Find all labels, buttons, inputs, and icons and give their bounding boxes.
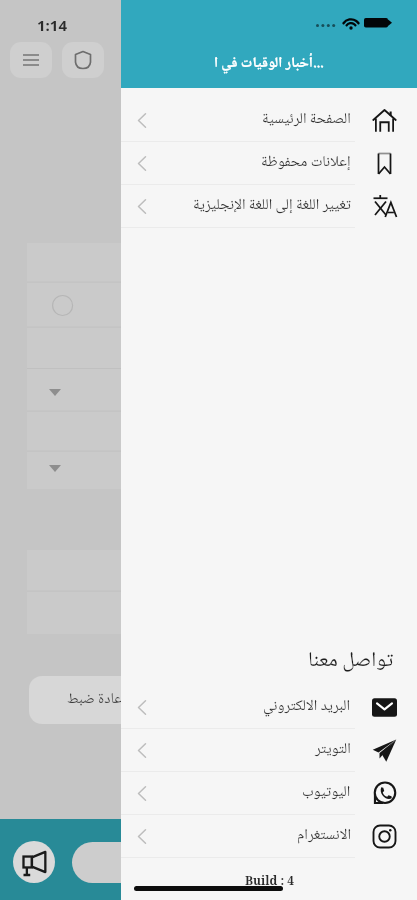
staticText: أخبار الوقيات في ا... — [214, 51, 324, 76]
staticText: إعلانات محفوظة — [261, 150, 351, 176]
button[interactable]: اليوتيوب — [121, 772, 417, 814]
button[interactable]: البريد الالكتروني — [121, 686, 417, 728]
staticText: إعادة ضبط — [67, 687, 126, 713]
staticText: البريد الالكتروني — [263, 694, 351, 720]
button[interactable]: Announcements — [13, 841, 55, 883]
button[interactable]: Security — [62, 42, 104, 78]
staticText: تغيير اللغة إلى اللغة الإنجليزية — [193, 193, 351, 219]
staticText: الانستغرام — [297, 823, 351, 849]
button[interactable]: تغيير اللغة إلى اللغة الإنجليزية — [121, 185, 417, 227]
button[interactable]: الصفحة الرئيسية — [121, 99, 417, 141]
button[interactable]: الانستغرام — [121, 815, 417, 857]
staticText: التويتر — [315, 737, 351, 763]
staticText: Build : 4 — [245, 872, 294, 888]
button[interactable]: Menu — [10, 42, 52, 78]
staticText: اليوتيوب — [302, 780, 351, 806]
staticText: 1:14 — [37, 15, 67, 35]
button[interactable]: إعلانات محفوظة — [121, 142, 417, 184]
button[interactable]: التويتر — [121, 729, 417, 771]
button[interactable]: إعادة ضبط — [29, 676, 149, 724]
staticText: الصفحة الرئيسية — [262, 107, 351, 133]
staticText: تواصل معنا — [308, 644, 394, 680]
